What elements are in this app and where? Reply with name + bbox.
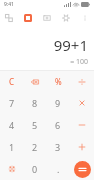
staticText: 1 xyxy=(9,141,15,153)
button[interactable]: Currency converter xyxy=(37,9,56,26)
staticText: % xyxy=(55,76,62,87)
staticText: 9 xyxy=(55,97,61,109)
button[interactable]: 7 xyxy=(0,92,23,114)
button[interactable]: 0 xyxy=(23,158,46,180)
button[interactable]: 4 xyxy=(0,114,23,136)
button[interactable]: Minus xyxy=(70,114,94,136)
staticText: 7 xyxy=(9,97,15,109)
button[interactable]: History xyxy=(0,9,18,26)
button[interactable]: Calculator xyxy=(18,9,37,26)
button[interactable]: Scientific xyxy=(0,158,23,180)
staticText: 5 xyxy=(32,119,38,131)
staticText: 8 xyxy=(32,97,38,109)
button[interactable]: . xyxy=(46,158,70,180)
staticText: 0 xyxy=(32,163,38,175)
button[interactable]: C xyxy=(0,71,23,92)
button[interactable]: 3 xyxy=(46,136,70,158)
button[interactable]: 6 xyxy=(46,114,70,136)
staticText: = 100 xyxy=(70,57,88,67)
button[interactable]: 1 xyxy=(0,136,23,158)
button[interactable]: 2 xyxy=(23,136,46,158)
button[interactable]: Plus xyxy=(70,136,94,158)
staticText: 99+1 xyxy=(53,35,88,55)
staticText: 4 xyxy=(9,119,15,131)
button[interactable]: % xyxy=(46,71,70,92)
staticText: . xyxy=(57,163,60,175)
button[interactable]: Multiply xyxy=(70,92,94,114)
button[interactable]: 9 xyxy=(46,92,70,114)
staticText: 6 xyxy=(55,119,61,131)
staticText: 2 xyxy=(32,141,38,153)
button[interactable]: Equals xyxy=(74,161,91,178)
staticText: 9:41 xyxy=(4,1,14,8)
button[interactable]: 8 xyxy=(23,92,46,114)
staticText: C xyxy=(9,76,15,87)
button[interactable]: Divide xyxy=(70,71,94,92)
button[interactable]: Unit converter xyxy=(56,9,75,26)
button[interactable]: 5 xyxy=(23,114,46,136)
button[interactable]: Backspace xyxy=(23,71,46,92)
staticText: 3 xyxy=(55,141,61,153)
